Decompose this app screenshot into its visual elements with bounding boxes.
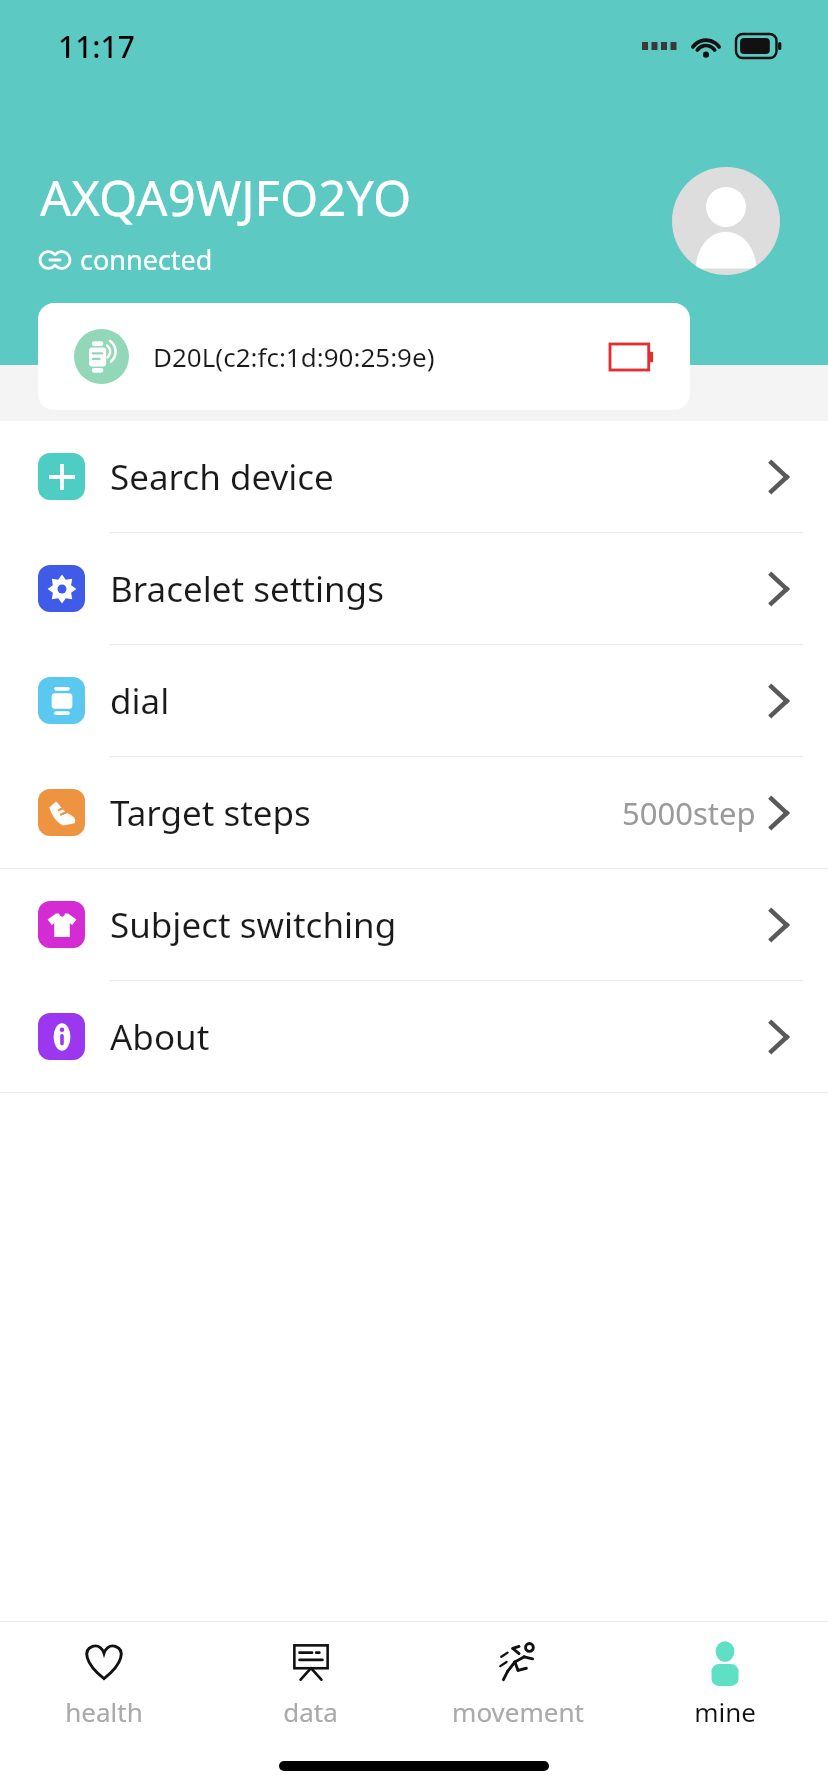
staticText: Bracelet settings [110,565,384,613]
button[interactable]: Bracelet settings [0,533,828,644]
staticText: mine [694,1694,756,1729]
staticText: D20L(c2:fc:1d:90:25:9e) [153,339,435,374]
staticText: health [65,1694,143,1729]
staticText: Target steps [110,789,311,837]
button[interactable]: Target steps [0,757,828,868]
staticText: data [283,1694,338,1729]
staticText: connected [80,241,213,278]
staticText: Subject switching [110,901,397,949]
staticText: 11:17 [58,26,135,67]
staticText: movement [452,1694,584,1729]
button[interactable]: Subject switching [0,869,828,980]
button[interactable]: D20L(c2:fc:1d:90:25:9e) [38,303,690,410]
button[interactable]: Search device [0,421,828,532]
staticText: AXQA9WJFO2YO [40,164,412,231]
button[interactable]: Profile [672,167,780,275]
staticText: About [110,1013,210,1061]
staticText: Search device [110,453,334,501]
button[interactable]: data [207,1622,414,1747]
button[interactable]: About [0,981,828,1092]
button[interactable]: movement [414,1622,621,1747]
button[interactable]: health [0,1622,207,1747]
button[interactable]: mine [621,1622,828,1747]
staticText: 5000step [622,792,756,834]
button[interactable]: dial [0,645,828,756]
staticText: dial [110,677,170,725]
